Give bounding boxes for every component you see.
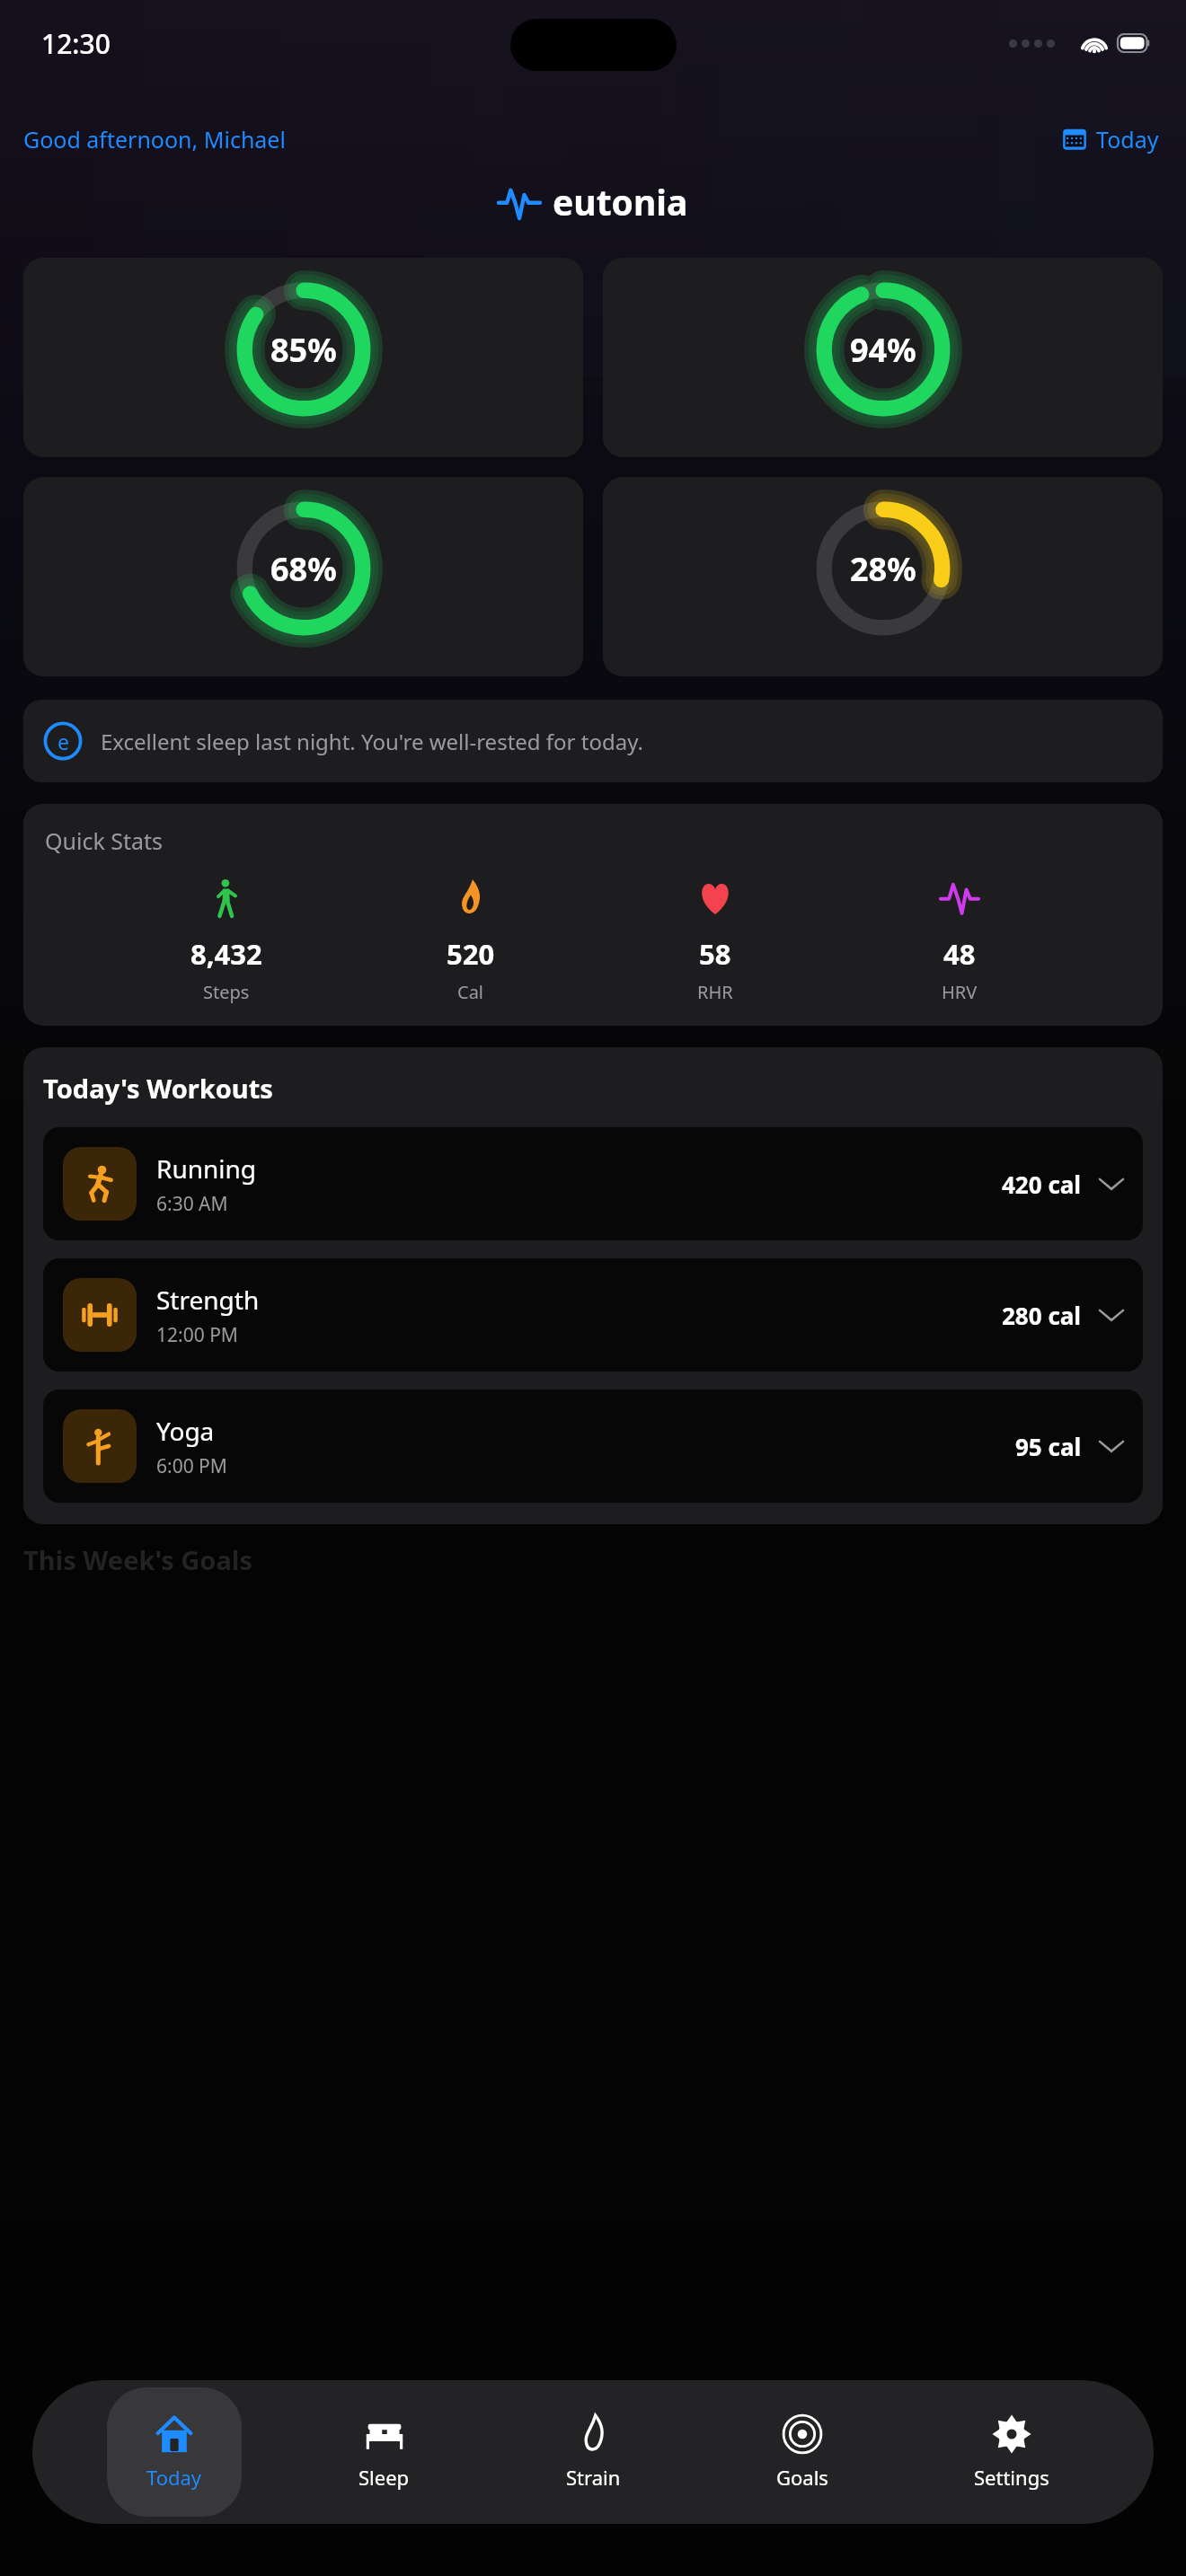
- staticText: Yoga: [156, 1414, 215, 1448]
- staticText: 8,432: [190, 935, 262, 973]
- button[interactable]: Yoga: [43, 1389, 1143, 1503]
- staticText: Strength: [156, 1283, 260, 1317]
- staticText: 85%: [270, 328, 337, 372]
- button[interactable]: Running: [43, 1127, 1143, 1240]
- button[interactable]: Today: [107, 2387, 242, 2517]
- button[interactable]: e: [23, 700, 1163, 782]
- staticText: Today: [1096, 124, 1159, 154]
- staticText: 12:30: [41, 25, 111, 62]
- staticText: Today: [146, 2464, 202, 2491]
- staticText: 420 cal: [1002, 1169, 1082, 1200]
- button[interactable]: Quick Stats: [23, 804, 1163, 1026]
- button[interactable]: 520: [408, 878, 534, 1004]
- staticText: Goals: [776, 2464, 828, 2491]
- button[interactable]: 8,432: [164, 878, 289, 1004]
- staticText: Settings: [974, 2464, 1049, 2491]
- other: Expand: [1100, 1439, 1123, 1453]
- staticText: 6:30 AM: [156, 1191, 228, 1217]
- staticText: 12:00 PM: [156, 1322, 238, 1348]
- staticText: HRV: [942, 980, 978, 1004]
- staticText: Excellent sleep last night. You're well-…: [101, 727, 1143, 756]
- staticText: 28%: [850, 547, 916, 591]
- staticText: Sleep: [358, 2464, 410, 2491]
- staticText: 520: [447, 935, 495, 973]
- staticText: Strain: [566, 2464, 621, 2491]
- staticText: Cal: [457, 980, 484, 1004]
- staticText: 6:00 PM: [156, 1453, 227, 1479]
- button[interactable]: Sleep: [316, 2387, 451, 2517]
- staticText: Quick Stats: [45, 825, 164, 856]
- button[interactable]: 28%: [603, 477, 1163, 676]
- staticText: Today's Workouts: [43, 1071, 273, 1106]
- staticText: Running: [156, 1151, 257, 1186]
- button[interactable]: Strain: [526, 2387, 660, 2517]
- staticText: 280 cal: [1002, 1300, 1082, 1331]
- button[interactable]: Goals: [735, 2387, 870, 2517]
- staticText: 68%: [270, 547, 337, 591]
- other: Expand: [1100, 1308, 1123, 1322]
- button[interactable]: 48: [897, 878, 1022, 1004]
- button[interactable]: Settings: [944, 2387, 1079, 2517]
- staticText: eutonia: [553, 178, 688, 225]
- staticText: RHR: [697, 980, 733, 1004]
- staticText: e: [58, 728, 69, 755]
- staticText: 94%: [850, 328, 916, 372]
- staticText: 58: [699, 935, 731, 973]
- button[interactable]: 68%: [23, 477, 583, 676]
- other: Expand: [1100, 1177, 1123, 1191]
- button[interactable]: 85%: [23, 258, 583, 457]
- staticText: This Week's Goals: [23, 1542, 253, 1577]
- button[interactable]: Strength: [43, 1258, 1143, 1372]
- staticText: 95 cal: [1015, 1431, 1082, 1462]
- button[interactable]: 58: [652, 878, 778, 1004]
- staticText: 48: [943, 935, 976, 973]
- staticText: Steps: [203, 980, 250, 1004]
- button[interactable]: Good afternoon, Michael: [23, 124, 286, 154]
- button[interactable]: Today: [1058, 120, 1163, 158]
- button[interactable]: 94%: [603, 258, 1163, 457]
